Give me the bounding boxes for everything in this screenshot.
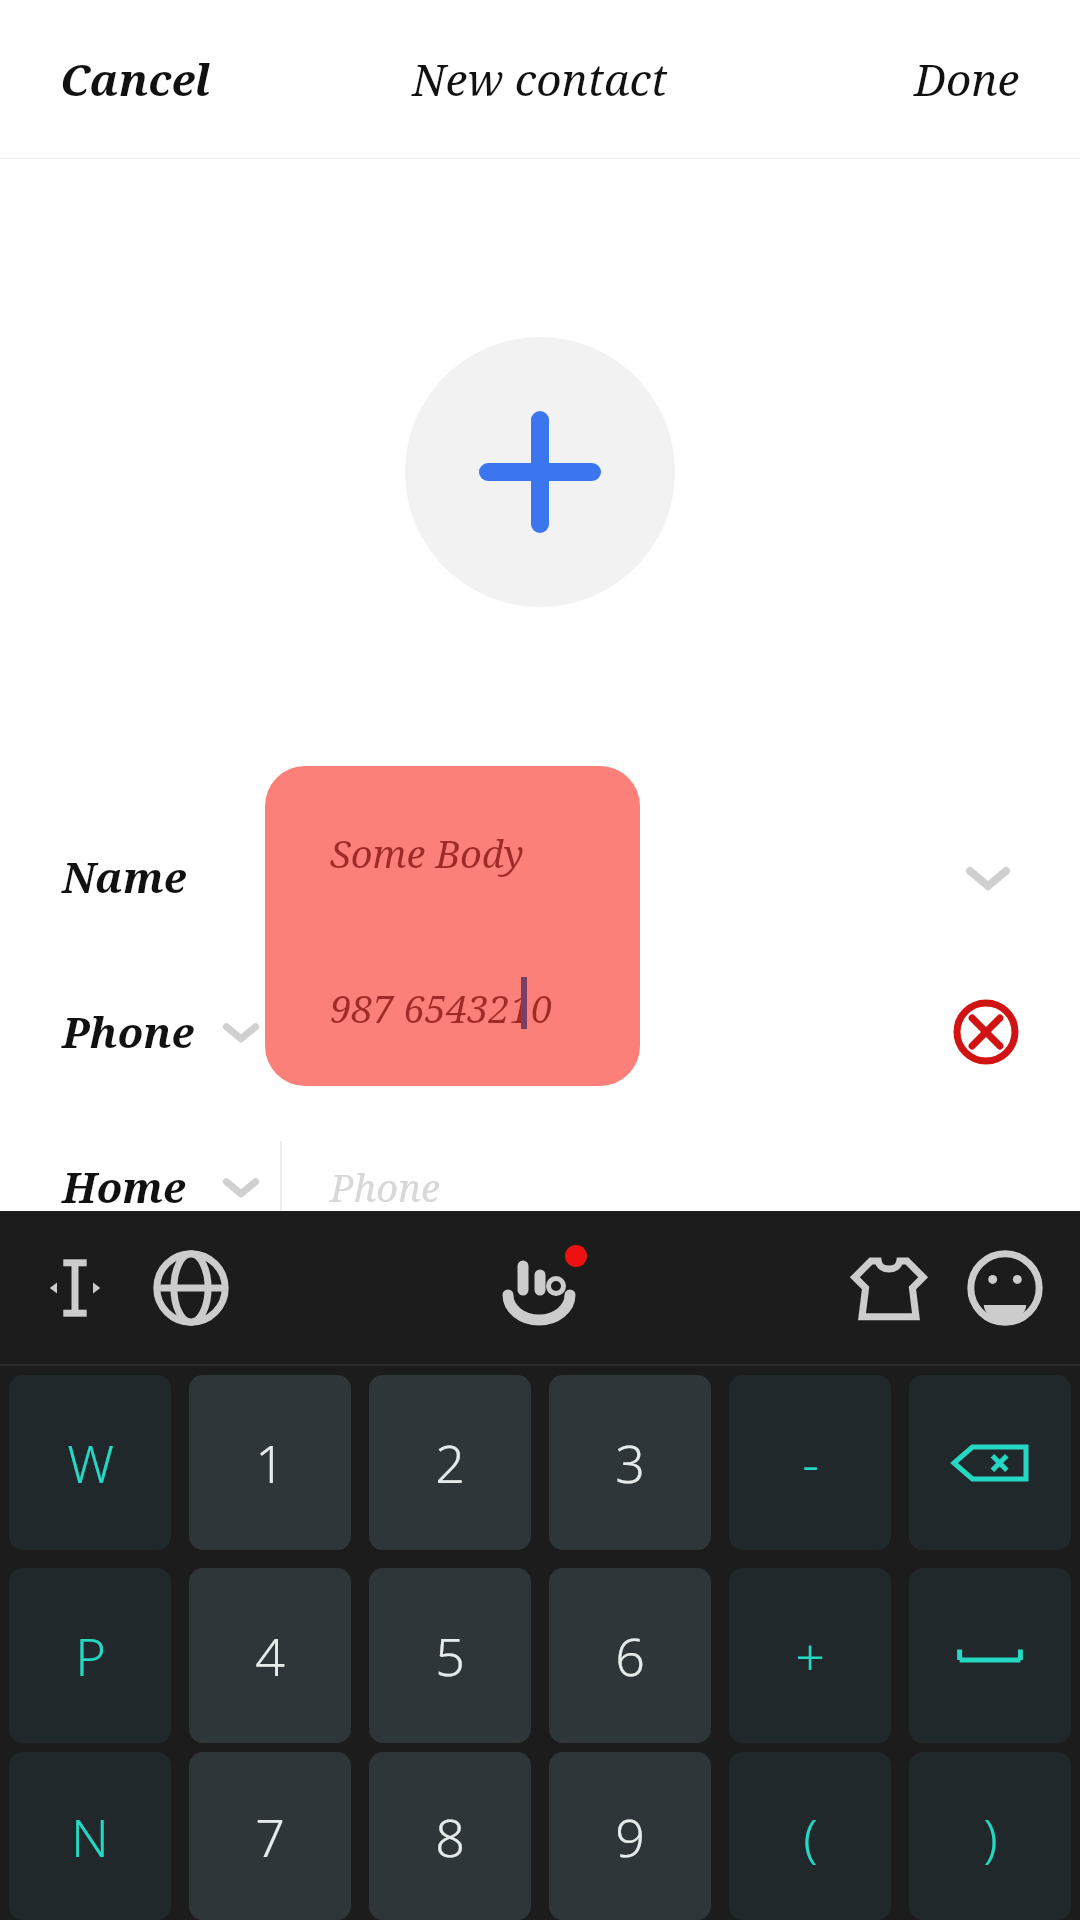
button[interactable]: 2	[369, 1375, 531, 1550]
staticText: W	[67, 1427, 114, 1498]
button[interactable]: 8	[369, 1752, 531, 1920]
button[interactable]: P	[9, 1568, 171, 1743]
button[interactable]: Emoji	[960, 1243, 1050, 1333]
button[interactable]: -	[729, 1375, 891, 1550]
staticText: Home	[62, 1158, 186, 1215]
button[interactable]: Language	[146, 1243, 236, 1333]
button[interactable]: Move cursor	[30, 1243, 120, 1333]
staticText: 2	[435, 1427, 465, 1498]
button[interactable]: (	[729, 1752, 891, 1920]
staticText: 4	[255, 1620, 285, 1691]
button[interactable]: Theme	[844, 1243, 934, 1333]
staticText: N	[71, 1801, 109, 1872]
staticText: Phone	[62, 1003, 195, 1060]
button[interactable]	[909, 1375, 1071, 1550]
staticText: Name	[62, 848, 187, 905]
button[interactable]: 7	[189, 1752, 351, 1920]
staticText: 7	[255, 1801, 285, 1872]
staticText: Cancel	[60, 49, 211, 109]
button[interactable]: 5	[369, 1568, 531, 1743]
button[interactable]: )	[909, 1752, 1071, 1920]
staticText: 1	[255, 1427, 285, 1498]
button[interactable]: Add photo	[405, 337, 675, 607]
button[interactable]: 4	[189, 1568, 351, 1743]
staticText: Phone	[330, 1161, 440, 1213]
button[interactable]: Done	[894, 35, 1040, 123]
staticText: (	[803, 1801, 818, 1872]
staticText: )	[983, 1801, 998, 1872]
button[interactable]: 1	[189, 1375, 351, 1550]
button[interactable]: 3	[549, 1375, 711, 1550]
staticText: New contact	[412, 49, 668, 109]
staticText: 8	[435, 1801, 465, 1872]
button[interactable]: Clear	[950, 996, 1022, 1068]
staticText: +	[795, 1620, 825, 1691]
staticText: Some Body	[330, 827, 524, 879]
staticText: 5	[435, 1620, 465, 1691]
button[interactable]: Cancel	[40, 35, 231, 123]
staticText: 9	[615, 1801, 645, 1872]
button[interactable]: Name	[0, 799, 1080, 954]
staticText: 6	[615, 1620, 645, 1691]
button[interactable]	[909, 1568, 1071, 1743]
staticText: -	[802, 1427, 819, 1498]
staticText: 987 6543210	[330, 982, 553, 1034]
button[interactable]: 6	[549, 1568, 711, 1743]
button[interactable]: 9	[549, 1752, 711, 1920]
staticText: P	[75, 1620, 106, 1691]
staticText: Done	[914, 49, 1020, 109]
button[interactable]: W	[9, 1375, 171, 1550]
staticText: 3	[615, 1427, 645, 1498]
button[interactable]: N	[9, 1752, 171, 1920]
button[interactable]: Phone	[0, 954, 1080, 1109]
button[interactable]: Home	[0, 1109, 1080, 1264]
button[interactable]: Keyboard menu	[490, 1238, 590, 1338]
button[interactable]: +	[729, 1568, 891, 1743]
